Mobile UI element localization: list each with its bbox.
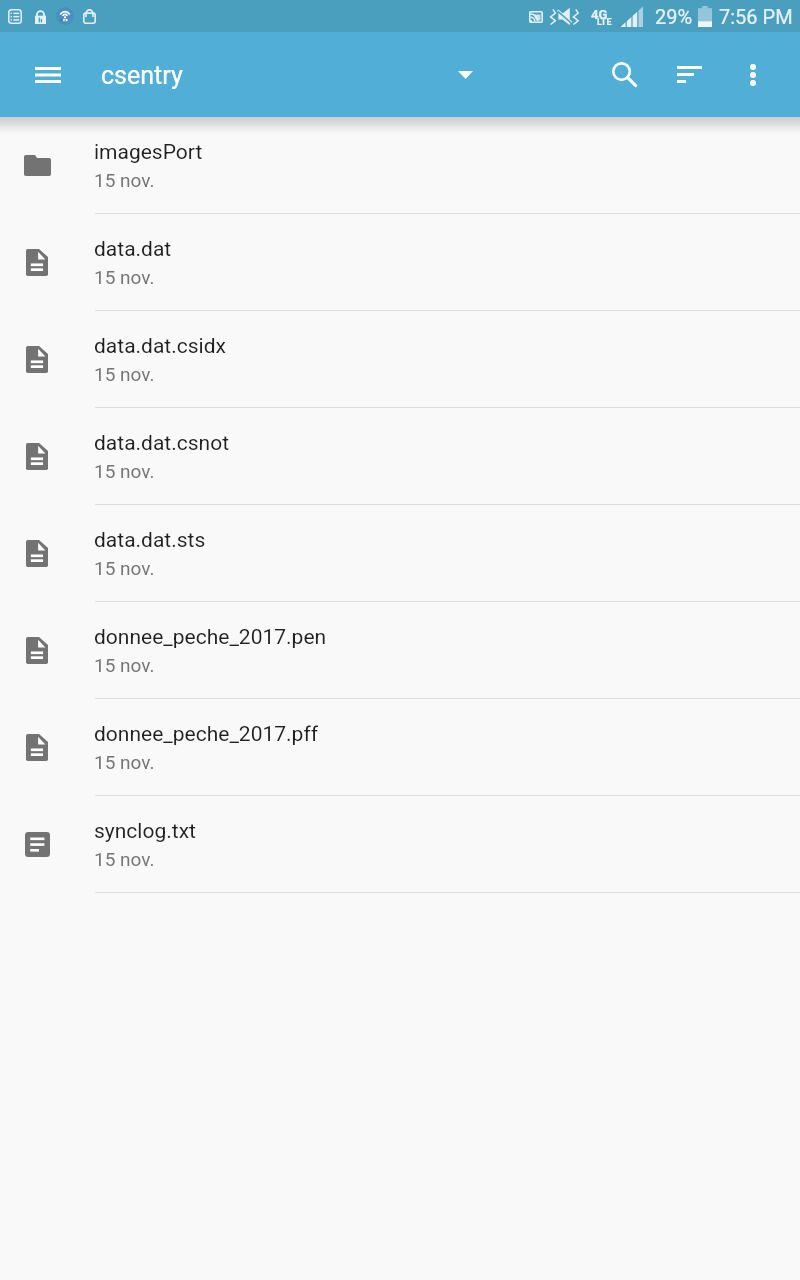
button[interactable]: data.dat.sts [0,505,800,602]
staticText: 15 nov. [94,848,155,870]
staticText: 15 nov. [94,266,155,288]
button[interactable]: imagesPort [0,117,800,214]
button[interactable]: More options [726,48,779,101]
staticText: donnee_peche_2017.pff [94,722,318,747]
staticText: 15 nov. [94,169,155,191]
staticText: csentry [101,61,183,90]
staticText: 15 nov. [94,460,155,482]
button[interactable]: Change folder [441,51,489,99]
button[interactable]: data.dat.csnot [0,408,800,505]
staticText: data.dat [94,237,172,262]
button[interactable]: Navigation menu [24,51,72,99]
staticText: 7:56 PM [719,5,793,28]
button[interactable]: Search [598,48,651,101]
staticText: imagesPort [94,140,203,165]
button[interactable]: donnee_peche_2017.pen [0,602,800,699]
staticText: synclog.txt [94,819,196,844]
button[interactable]: synclog.txt [0,796,800,893]
staticText: 15 nov. [94,751,155,773]
staticText: data.dat.csnot [94,431,230,456]
staticText: 15 nov. [94,654,155,676]
button[interactable]: Sort [663,48,716,101]
staticText: 15 nov. [94,557,155,579]
button[interactable]: donnee_peche_2017.pff [0,699,800,796]
staticText: 29% [655,5,693,28]
staticText: LTE [597,17,612,28]
staticText: data.dat.csidx [94,334,226,359]
staticText: 4G [591,7,608,22]
staticText: data.dat.sts [94,528,206,553]
staticText: donnee_peche_2017.pen [94,625,327,650]
staticText: 15 nov. [94,363,155,385]
button[interactable]: data.dat [0,214,800,311]
button[interactable]: data.dat.csidx [0,311,800,408]
